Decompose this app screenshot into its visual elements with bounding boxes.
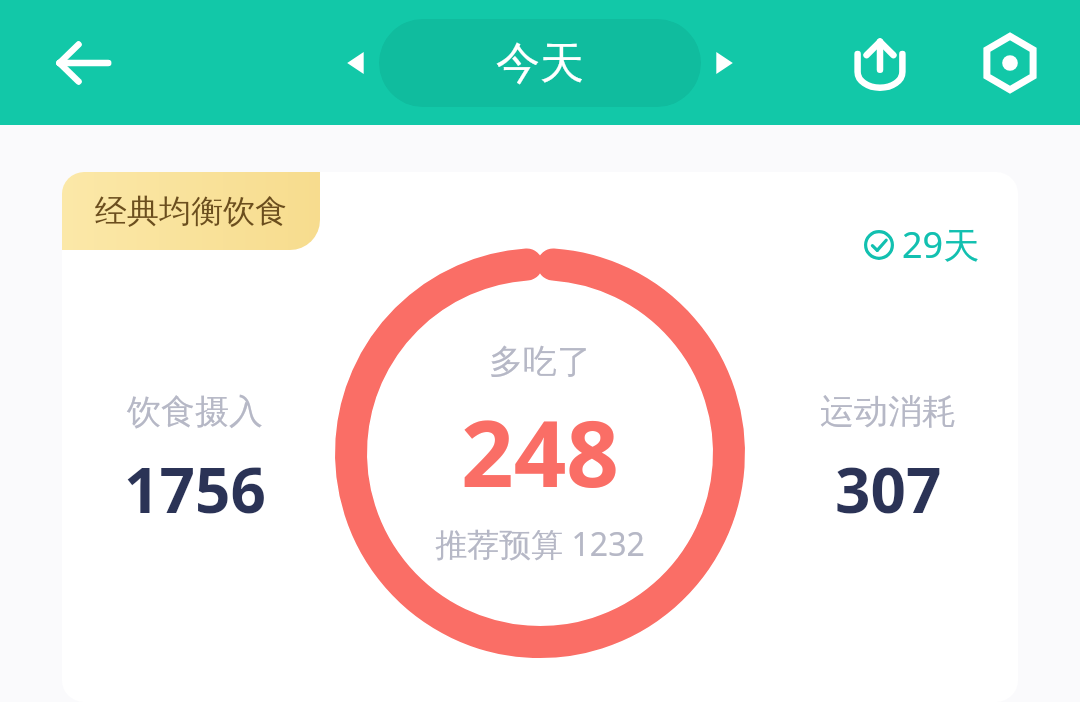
button[interactable]: Back <box>28 8 138 118</box>
button[interactable]: 今天 <box>379 19 701 107</box>
button[interactable]: 饮食摄入 <box>124 390 266 531</box>
staticText: 307 <box>835 447 942 531</box>
button[interactable]: 运动消耗 <box>820 390 956 531</box>
staticText: 1756 <box>124 447 266 531</box>
staticText: 运动消耗 <box>820 390 956 433</box>
button[interactable]: 经典均衡饮食 <box>62 172 320 250</box>
staticText: 经典均衡饮食 <box>95 191 287 231</box>
button[interactable]: Share <box>830 13 930 113</box>
button[interactable]: 经典均衡饮食 <box>62 172 1018 702</box>
staticText: 多吃了 <box>489 340 591 383</box>
staticText: 29天 <box>902 220 980 269</box>
button[interactable]: Previous day <box>333 28 379 98</box>
staticText: 饮食摄入 <box>127 390 263 433</box>
staticText: 今天 <box>496 36 584 91</box>
button[interactable]: 29天 <box>864 220 980 269</box>
button[interactable]: 多吃了 <box>335 248 745 658</box>
staticText: 推荐预算 1232 <box>435 522 645 566</box>
button[interactable]: Next day <box>701 28 747 98</box>
staticText: 248 <box>461 389 619 514</box>
button[interactable]: Settings <box>960 13 1060 113</box>
